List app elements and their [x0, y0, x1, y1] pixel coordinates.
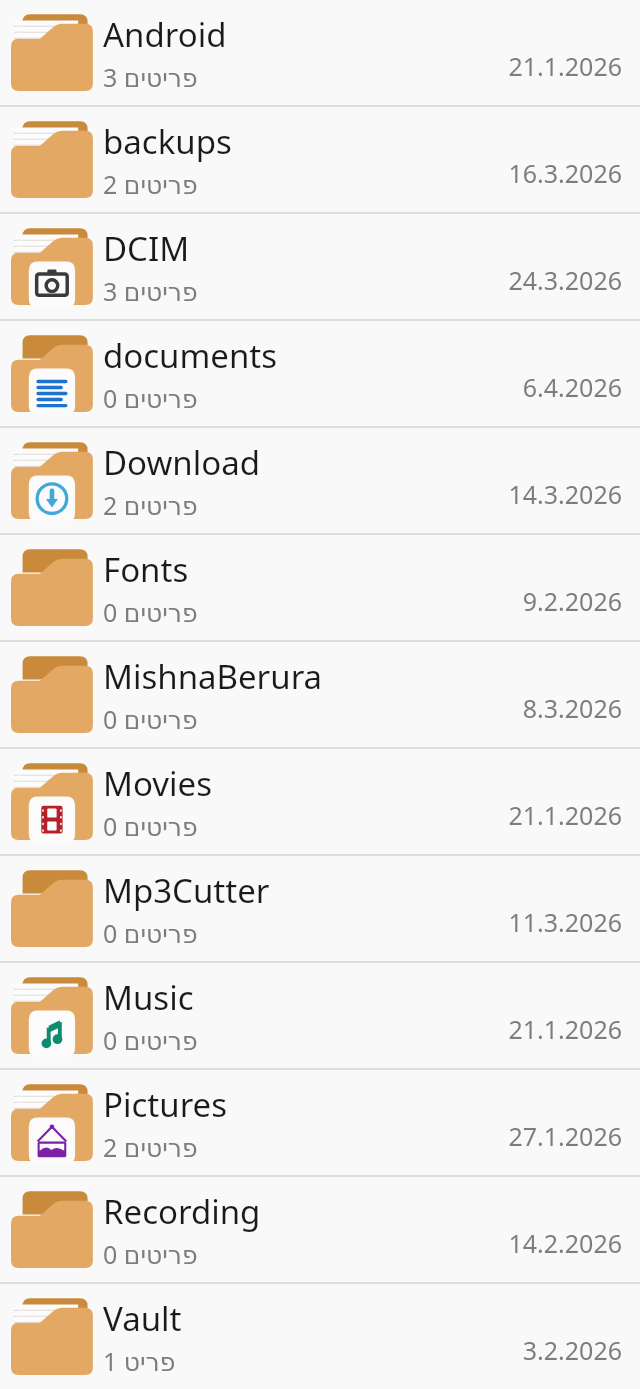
staticText: 21.1.2026: [508, 49, 622, 83]
staticText: Music: [103, 975, 194, 1020]
button[interactable]: DCIM: [0, 214, 640, 321]
staticText: 9.2.2026: [522, 584, 622, 618]
staticText: Movies: [103, 761, 212, 806]
staticText: פריטים 0: [103, 381, 198, 415]
staticText: פריט 1: [103, 1344, 176, 1378]
staticText: Pictures: [103, 1082, 228, 1127]
button[interactable]: Music: [0, 963, 640, 1070]
staticText: Android: [103, 12, 227, 57]
button[interactable]: Recording: [0, 1177, 640, 1284]
staticText: DCIM: [103, 226, 190, 271]
staticText: פריטים 0: [103, 809, 198, 843]
staticText: 14.3.2026: [508, 477, 622, 511]
staticText: MishnaBerura: [103, 654, 323, 699]
staticText: פריטים 0: [103, 1023, 198, 1057]
button[interactable]: Mp3Cutter: [0, 856, 640, 963]
staticText: 21.1.2026: [508, 1012, 622, 1046]
staticText: 8.3.2026: [522, 691, 622, 725]
staticText: 11.3.2026: [508, 905, 622, 939]
staticText: Vault: [103, 1296, 182, 1341]
button[interactable]: Fonts: [0, 535, 640, 642]
staticText: documents: [103, 333, 278, 378]
staticText: פריטים 0: [103, 916, 198, 950]
staticText: פריטים 3: [103, 60, 198, 94]
staticText: Fonts: [103, 547, 189, 592]
button[interactable]: MishnaBerura: [0, 642, 640, 749]
button[interactable]: documents: [0, 321, 640, 428]
button[interactable]: Android: [0, 0, 640, 107]
button[interactable]: Movies: [0, 749, 640, 856]
staticText: פריטים 2: [103, 1130, 198, 1164]
button[interactable]: Vault: [0, 1284, 640, 1389]
staticText: 24.3.2026: [508, 263, 622, 297]
staticText: פריטים 0: [103, 1237, 198, 1271]
staticText: פריטים 3: [103, 274, 198, 308]
staticText: 27.1.2026: [508, 1119, 622, 1153]
staticText: 21.1.2026: [508, 798, 622, 832]
staticText: Recording: [103, 1189, 261, 1234]
staticText: 16.3.2026: [508, 156, 622, 190]
staticText: 3.2.2026: [522, 1333, 622, 1367]
staticText: Mp3Cutter: [103, 868, 270, 913]
staticText: פריטים 0: [103, 702, 198, 736]
button[interactable]: backups: [0, 107, 640, 214]
button[interactable]: Download: [0, 428, 640, 535]
staticText: פריטים 2: [103, 167, 198, 201]
staticText: Download: [103, 440, 261, 485]
staticText: 6.4.2026: [522, 370, 622, 404]
staticText: פריטים 0: [103, 595, 198, 629]
staticText: 14.2.2026: [508, 1226, 622, 1260]
staticText: backups: [103, 119, 232, 164]
staticText: פריטים 2: [103, 488, 198, 522]
button[interactable]: Pictures: [0, 1070, 640, 1177]
